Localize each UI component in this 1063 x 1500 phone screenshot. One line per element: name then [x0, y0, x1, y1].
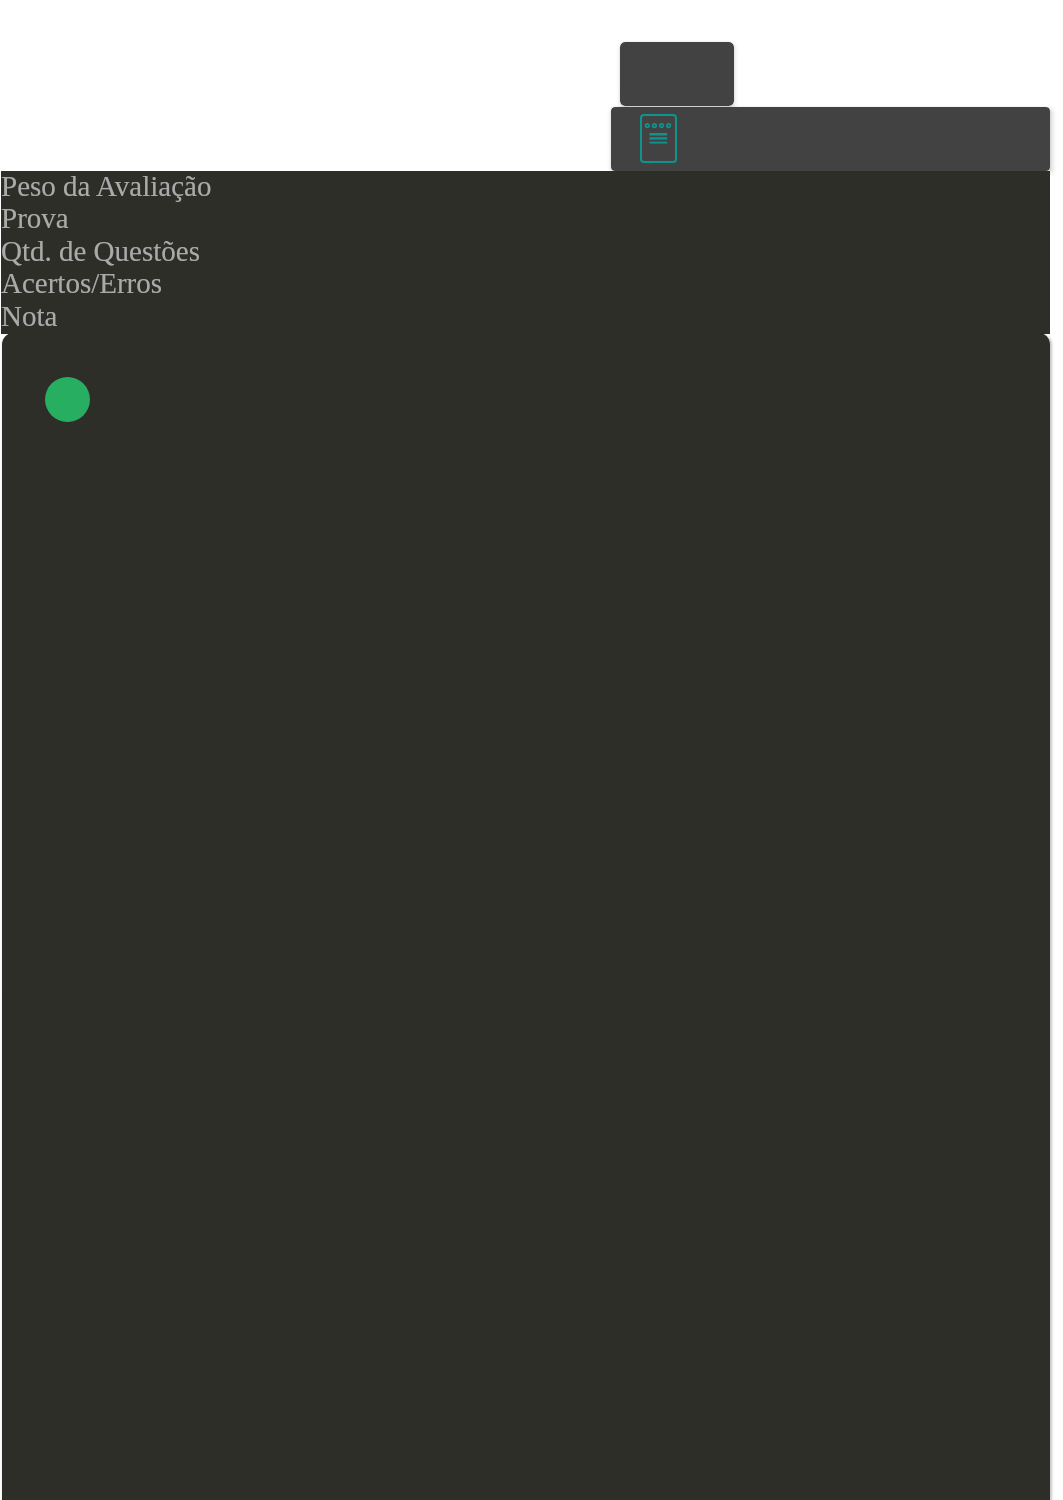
staticText: Qtd. de Questões	[1, 235, 200, 267]
staticText: Prova	[1, 202, 69, 234]
staticText: Peso da Avaliação	[1, 170, 212, 202]
button[interactable]: Avaliações	[635, 109, 682, 168]
button[interactable]	[620, 42, 734, 106]
staticText: Nota	[1, 300, 58, 332]
button[interactable]	[2, 333, 1050, 1500]
staticText: Acertos/Erros	[1, 267, 163, 299]
